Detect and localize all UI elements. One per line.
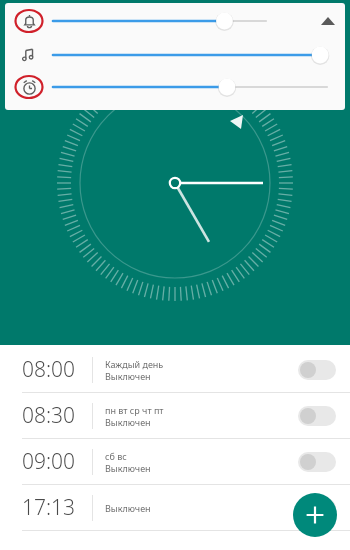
button[interactable] [298,498,336,518]
staticText: 08:00 [22,355,92,384]
staticText: 08:30 [22,401,92,430]
button[interactable] [298,406,336,426]
button[interactable]: 17:13 [0,485,350,531]
button[interactable]: Ringer volume [5,3,53,39]
button[interactable]: 09:00 [0,439,350,485]
staticText: Выключен [105,416,151,428]
staticText: Выключен [105,502,151,514]
button[interactable]: Collapse [311,3,345,39]
staticText: Выключен [105,462,151,474]
staticText: Выключен [105,370,151,382]
button[interactable]: 08:30 [0,393,350,439]
button[interactable] [53,71,327,103]
button[interactable]: Media volume [5,39,53,71]
staticText: пн вт ср чт пт [105,404,164,416]
staticText: 09:00 [22,447,92,476]
staticText: 17:13 [22,493,92,522]
staticText: сб вс [105,450,127,462]
button[interactable] [53,3,311,39]
staticText: Каждый день [105,358,164,370]
button[interactable]: Alarm volume [5,71,53,103]
button[interactable] [53,39,327,71]
button[interactable]: 08:00 [0,347,350,393]
button[interactable]: Add alarm [293,493,337,537]
button[interactable] [298,360,336,380]
button[interactable] [298,452,336,472]
